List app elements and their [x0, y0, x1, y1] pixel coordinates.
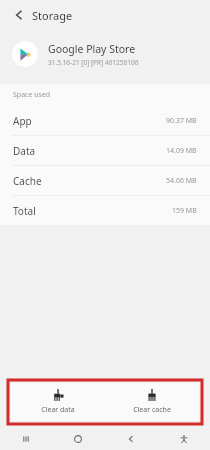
- button[interactable]: Cache: [0, 166, 210, 195]
- staticText: 31.5.16-21 [0] [PR] 461258106: [48, 58, 139, 67]
- button[interactable]: Google Play Store: [0, 30, 210, 78]
- staticText: 14.09 MB: [166, 146, 197, 156]
- button[interactable]: Data: [0, 136, 210, 165]
- button[interactable]: Recents: [0, 428, 52, 450]
- staticText: Clear data: [41, 405, 75, 415]
- button[interactable]: Back: [104, 428, 157, 450]
- button[interactable]: App: [0, 106, 210, 135]
- staticText: Total: [13, 204, 36, 218]
- staticText: 90.37 MB: [166, 116, 197, 126]
- button[interactable]: Clear data: [11, 383, 105, 421]
- staticText: Space used: [13, 90, 51, 100]
- button[interactable]: Back: [8, 4, 30, 26]
- staticText: Clear cache: [133, 405, 171, 415]
- button[interactable]: Total: [0, 196, 210, 225]
- staticText: 159 MB: [172, 206, 197, 216]
- staticText: Storage: [32, 8, 73, 23]
- button[interactable]: Home: [52, 428, 104, 450]
- staticText: 54.06 MB: [166, 176, 197, 186]
- button[interactable]: Clear cache: [105, 383, 199, 421]
- staticText: App: [13, 114, 32, 128]
- staticText: Data: [13, 144, 36, 158]
- staticText: Google Play Store: [48, 42, 136, 56]
- button[interactable]: Accessibility: [157, 428, 210, 450]
- staticText: Cache: [13, 174, 42, 188]
